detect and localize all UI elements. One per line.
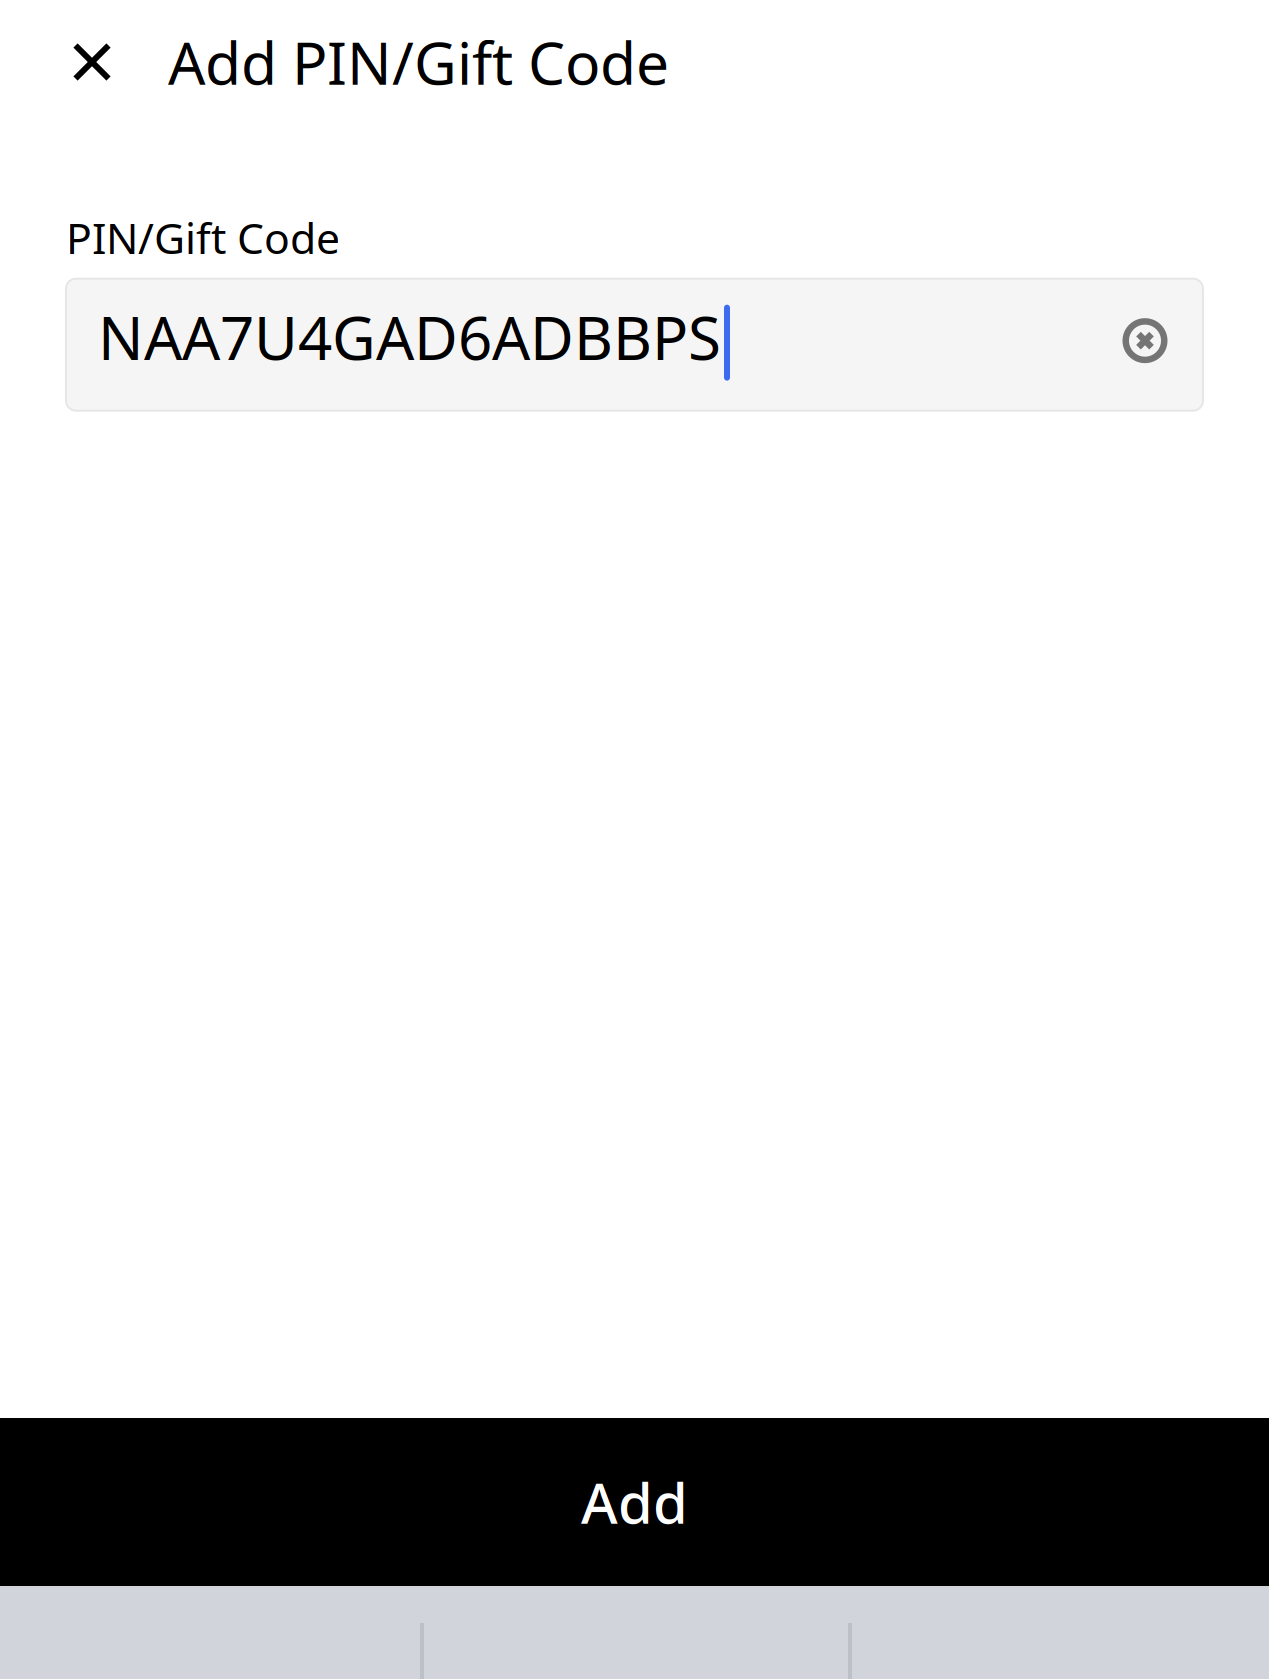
staticText: Add (581, 1465, 688, 1539)
button[interactable]: Close (64, 0, 120, 124)
button[interactable]: Clear text (1100, 286, 1190, 396)
button[interactable]: Add (0, 1418, 1269, 1586)
staticText: Add PIN/Gift Code (168, 23, 669, 101)
staticText: NAA7U4GAD6ADBBPS (98, 297, 721, 376)
button[interactable]: NAA7U4GAD6ADBBPS (66, 279, 1203, 411)
staticText: PIN/Gift Code (66, 209, 340, 266)
